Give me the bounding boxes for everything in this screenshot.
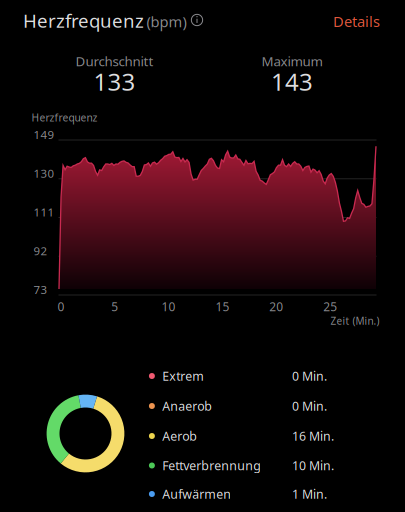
staticText: Details	[333, 11, 380, 31]
staticText: 143	[271, 65, 313, 98]
staticText: Aufwärmen	[162, 486, 231, 502]
button[interactable]: Details	[316, 7, 380, 35]
staticText: 25	[323, 298, 337, 315]
staticText: Herzfrequenz	[23, 8, 144, 33]
staticText: 0 Min.	[292, 368, 327, 384]
staticText: Extrem	[162, 368, 204, 384]
staticText: 111	[33, 204, 54, 220]
staticText: 130	[33, 165, 54, 181]
staticText: Zeit (Min.)	[330, 314, 379, 328]
staticText: (bpm)	[147, 11, 187, 31]
staticText: Anaerob	[162, 398, 212, 414]
staticText: 92	[33, 243, 47, 258]
staticText: 133	[93, 65, 135, 98]
staticText: 1 Min.	[292, 486, 327, 502]
staticText: 73	[33, 282, 47, 297]
staticText: Maximum	[261, 52, 322, 70]
staticText: 10	[162, 298, 176, 315]
staticText: 0 Min.	[292, 398, 327, 414]
staticText: 5	[111, 298, 118, 315]
staticText: 0	[57, 298, 64, 315]
staticText: 16 Min.	[292, 428, 334, 444]
staticText: 15	[215, 298, 229, 315]
staticText: Aerob	[162, 428, 197, 444]
staticText: 10 Min.	[292, 457, 334, 474]
staticText: 20	[269, 298, 283, 315]
staticText: Herzfrequenz	[31, 110, 97, 124]
staticText: Fettverbrennung	[162, 457, 261, 474]
staticText: Durchschnitt	[75, 52, 153, 70]
staticText: 149	[33, 127, 54, 142]
